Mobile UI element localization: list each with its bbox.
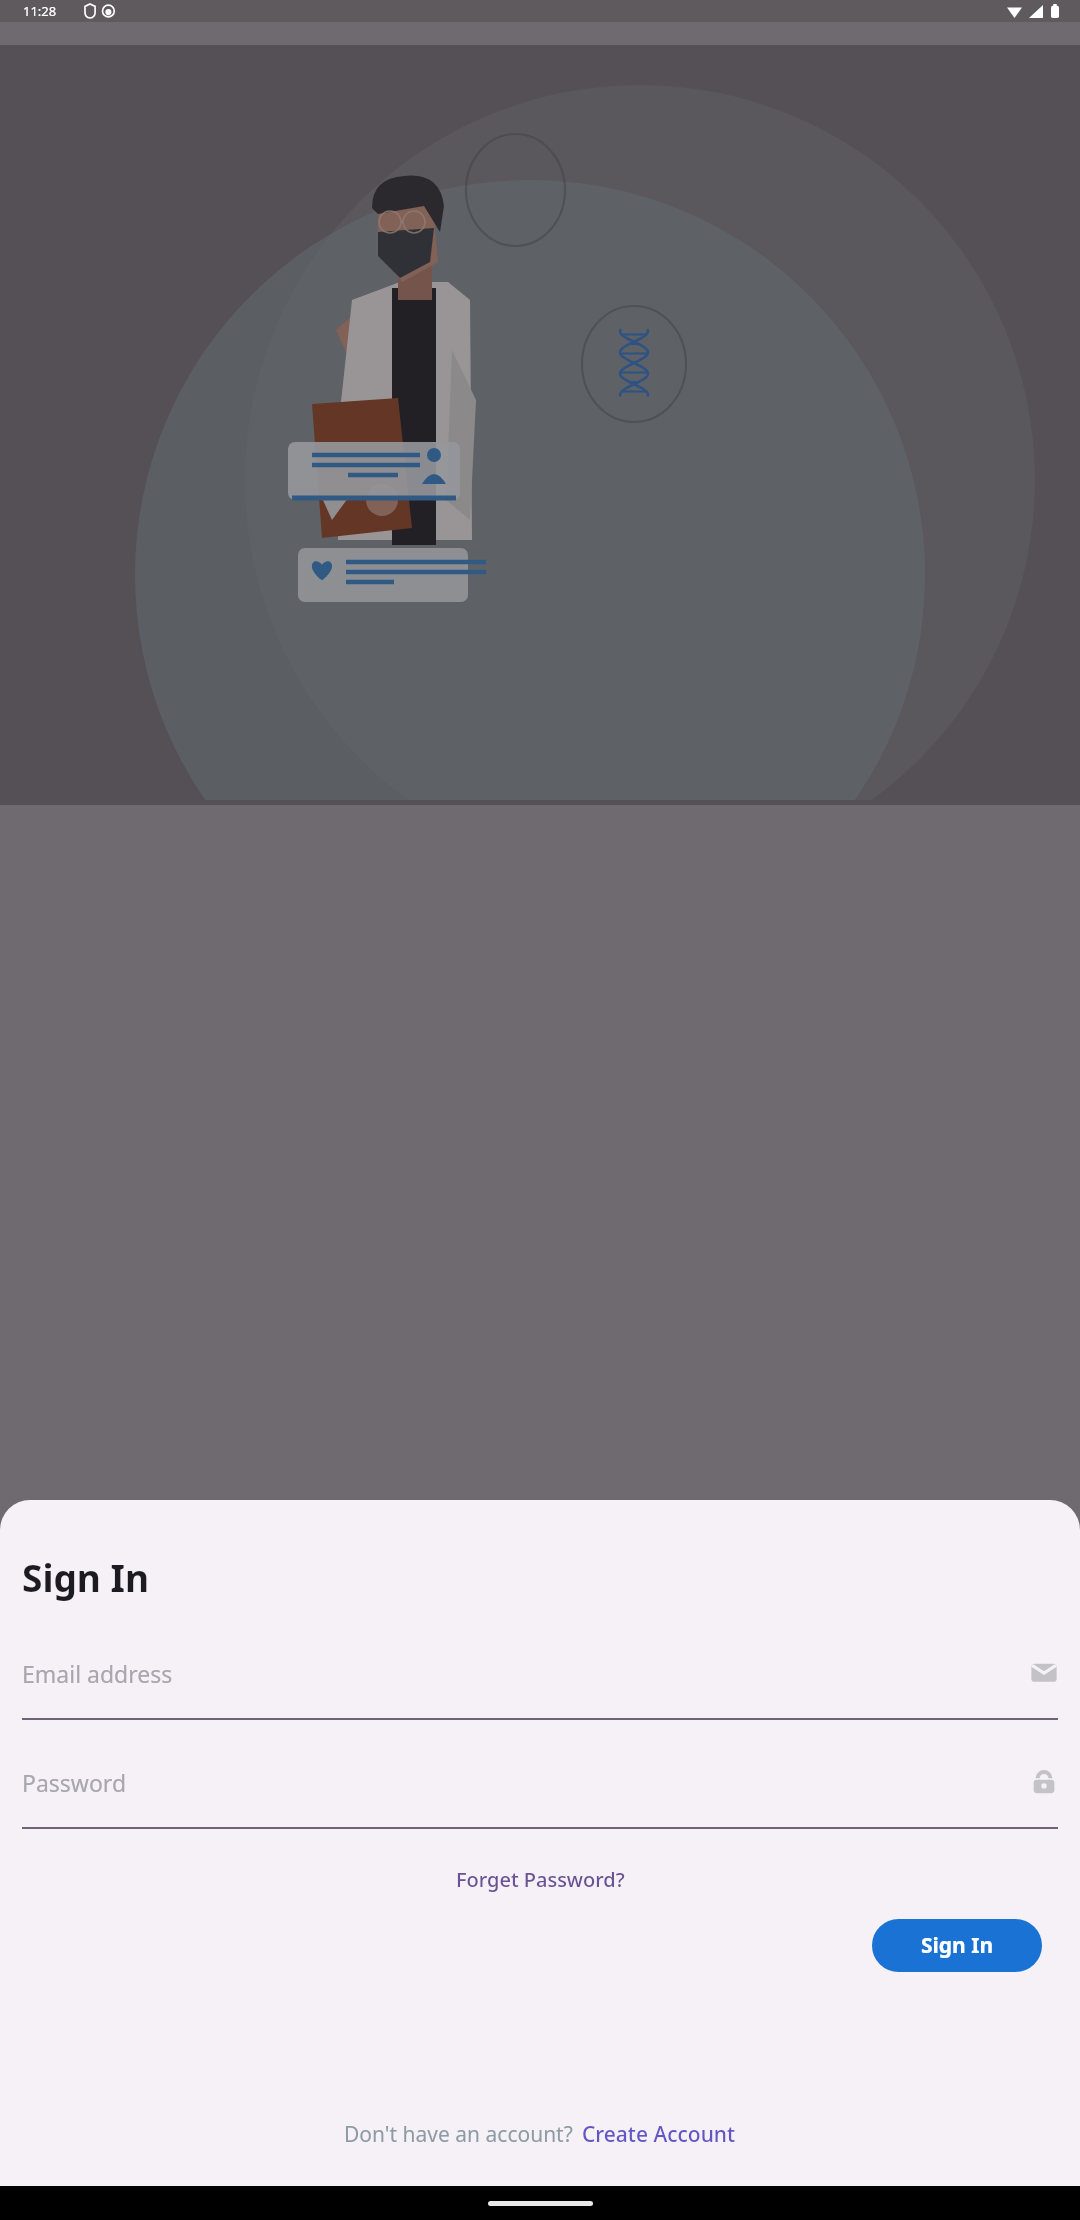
staticText: Password	[22, 1767, 1030, 1798]
button[interactable]: Create Account	[582, 2120, 736, 2149]
staticText: Sign In	[921, 1931, 994, 1960]
staticText: Create Account	[582, 2120, 736, 2149]
button[interactable]: Forget Password?	[0, 1861, 1080, 1898]
button[interactable]: Email address	[22, 1644, 1058, 1720]
staticText: Sign In	[22, 1552, 149, 1602]
staticText: Don't have an account?	[344, 2120, 573, 2149]
staticText: 11:28	[23, 2, 57, 20]
other: Password	[1030, 1768, 1058, 1796]
button[interactable]: Password	[22, 1753, 1058, 1829]
other: Email	[1030, 1659, 1058, 1687]
staticText: Forget Password?	[456, 1866, 625, 1893]
button[interactable]: Sign In	[872, 1919, 1042, 1972]
staticText: Email address	[22, 1658, 1030, 1689]
